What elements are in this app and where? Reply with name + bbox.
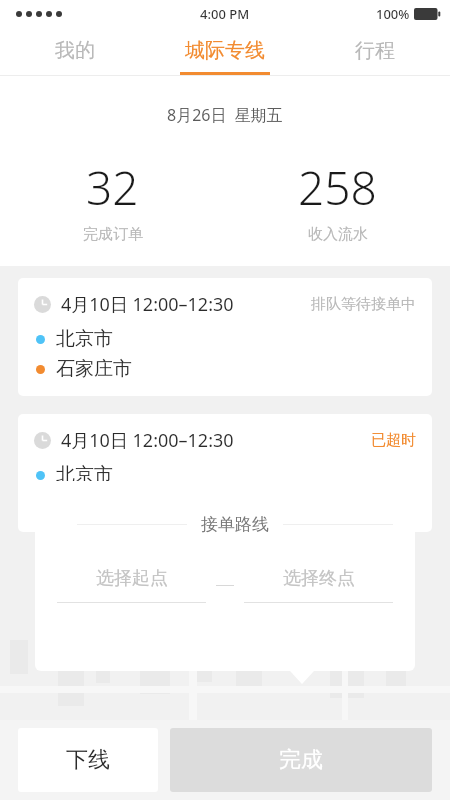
staticText: 完成 [279, 746, 323, 774]
staticText: 32 [86, 156, 139, 219]
staticText: 4月10日 12:00–12:30 [61, 292, 234, 317]
button[interactable]: 选择终点 [244, 567, 393, 603]
staticText: 4月10日 12:00–12:30 [61, 428, 234, 453]
button[interactable]: 4月10日 12:00–12:30 [18, 414, 432, 532]
staticText: 我的 [55, 38, 95, 63]
staticText: 排队等待接单中 [311, 295, 416, 314]
staticText: 选择起点 [96, 567, 168, 590]
staticText: 8月26日 星期五 [167, 104, 283, 126]
button[interactable]: 行程 [300, 28, 450, 72]
staticText: 258 [298, 156, 377, 219]
staticText: 石家庄市 [56, 357, 132, 381]
staticText: 北京市 [56, 327, 113, 351]
button[interactable]: 城际专线 [150, 28, 300, 72]
staticText: 北京市 [56, 463, 113, 487]
staticText: 接单路线 [201, 514, 269, 535]
button[interactable]: 我的 [0, 28, 150, 72]
staticText: 完成订单 [83, 225, 143, 244]
staticText: 4:00 PM [200, 5, 250, 23]
staticText: 收入流水 [308, 225, 368, 244]
staticText: 选择终点 [283, 567, 355, 590]
button[interactable]: 选择起点 [57, 567, 206, 603]
staticText: 已超时 [371, 431, 416, 450]
staticText: 城际专线 [185, 38, 265, 63]
staticText: 行程 [355, 38, 395, 63]
button[interactable]: 完成 [170, 728, 432, 792]
staticText: 下线 [66, 746, 110, 774]
button[interactable]: 4月10日 12:00–12:30 [18, 278, 432, 396]
button[interactable]: 下线 [18, 728, 158, 792]
staticText: 100% [376, 5, 410, 23]
